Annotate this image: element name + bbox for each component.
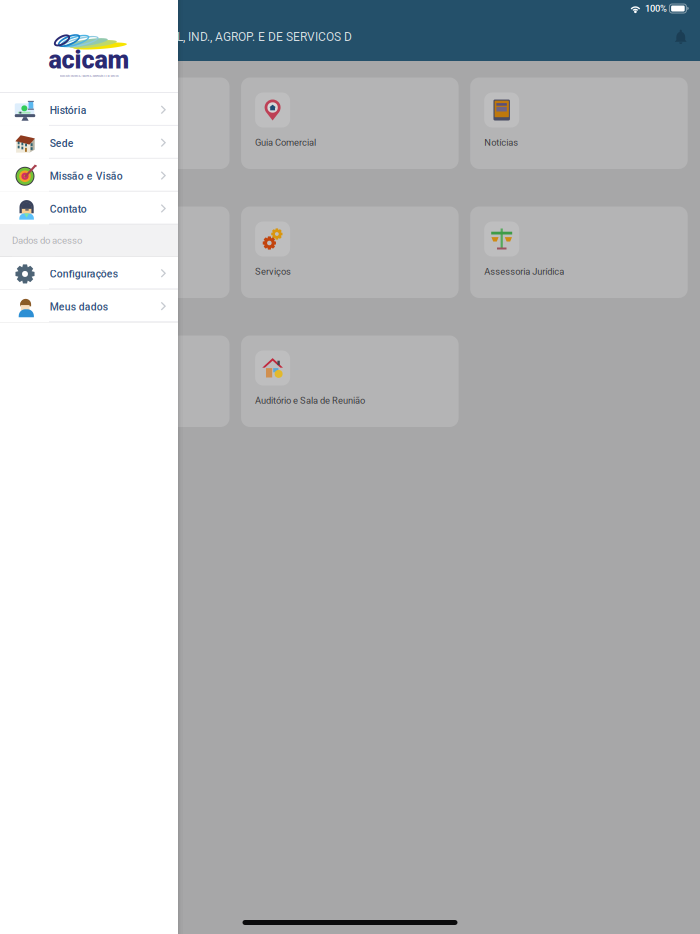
- staticText: Contato: [50, 203, 87, 215]
- staticText: ASSOCIAÇÃO COMERCIAL, INDUSTRIAL, AGROPE…: [59, 74, 118, 77]
- staticText: Missão e Visão: [50, 170, 123, 182]
- staticText: ACICAM — ASSOC. COMERCIAL, IND., AGROP. …: [14, 30, 352, 44]
- staticText: Associados: [26, 137, 74, 148]
- staticText: Benefícios: [26, 266, 69, 277]
- button[interactable]: Meus dados: [0, 289, 178, 322]
- staticText: História: [50, 104, 87, 117]
- staticText: Auditório e Sala de Reunião: [255, 395, 365, 406]
- button[interactable]: Benefícios: [12, 206, 229, 298]
- staticText: Assessoria Jurídica: [484, 266, 564, 277]
- button[interactable]: Contato: [0, 192, 178, 225]
- button[interactable]: Assessoria Jurídica: [470, 206, 688, 298]
- button[interactable]: História: [0, 93, 178, 126]
- button[interactable]: Serviços: [241, 206, 459, 298]
- staticText: Notícias: [484, 137, 518, 148]
- staticText: Dados do acesso: [12, 235, 82, 246]
- staticText: Sede: [50, 137, 74, 149]
- button[interactable]: Missão e Visão: [0, 159, 178, 192]
- button[interactable]: Cursos: [12, 335, 229, 427]
- button[interactable]: Configurações: [0, 256, 178, 289]
- staticText: Guia Comercial: [255, 137, 316, 148]
- button[interactable]: Associados: [12, 77, 229, 169]
- button[interactable]: Auditório e Sala de Reunião: [241, 335, 459, 427]
- button[interactable]: Sede: [0, 126, 178, 159]
- staticText: 100%: [645, 3, 667, 14]
- button[interactable]: Notifications: [666, 30, 700, 44]
- staticText: Serviços: [255, 266, 291, 277]
- staticText: Meus dados: [50, 301, 108, 313]
- staticText: acicam: [48, 45, 129, 74]
- button[interactable]: Guia Comercial: [241, 77, 459, 169]
- staticText: Configurações: [50, 268, 118, 280]
- button[interactable]: Notícias: [470, 77, 688, 169]
